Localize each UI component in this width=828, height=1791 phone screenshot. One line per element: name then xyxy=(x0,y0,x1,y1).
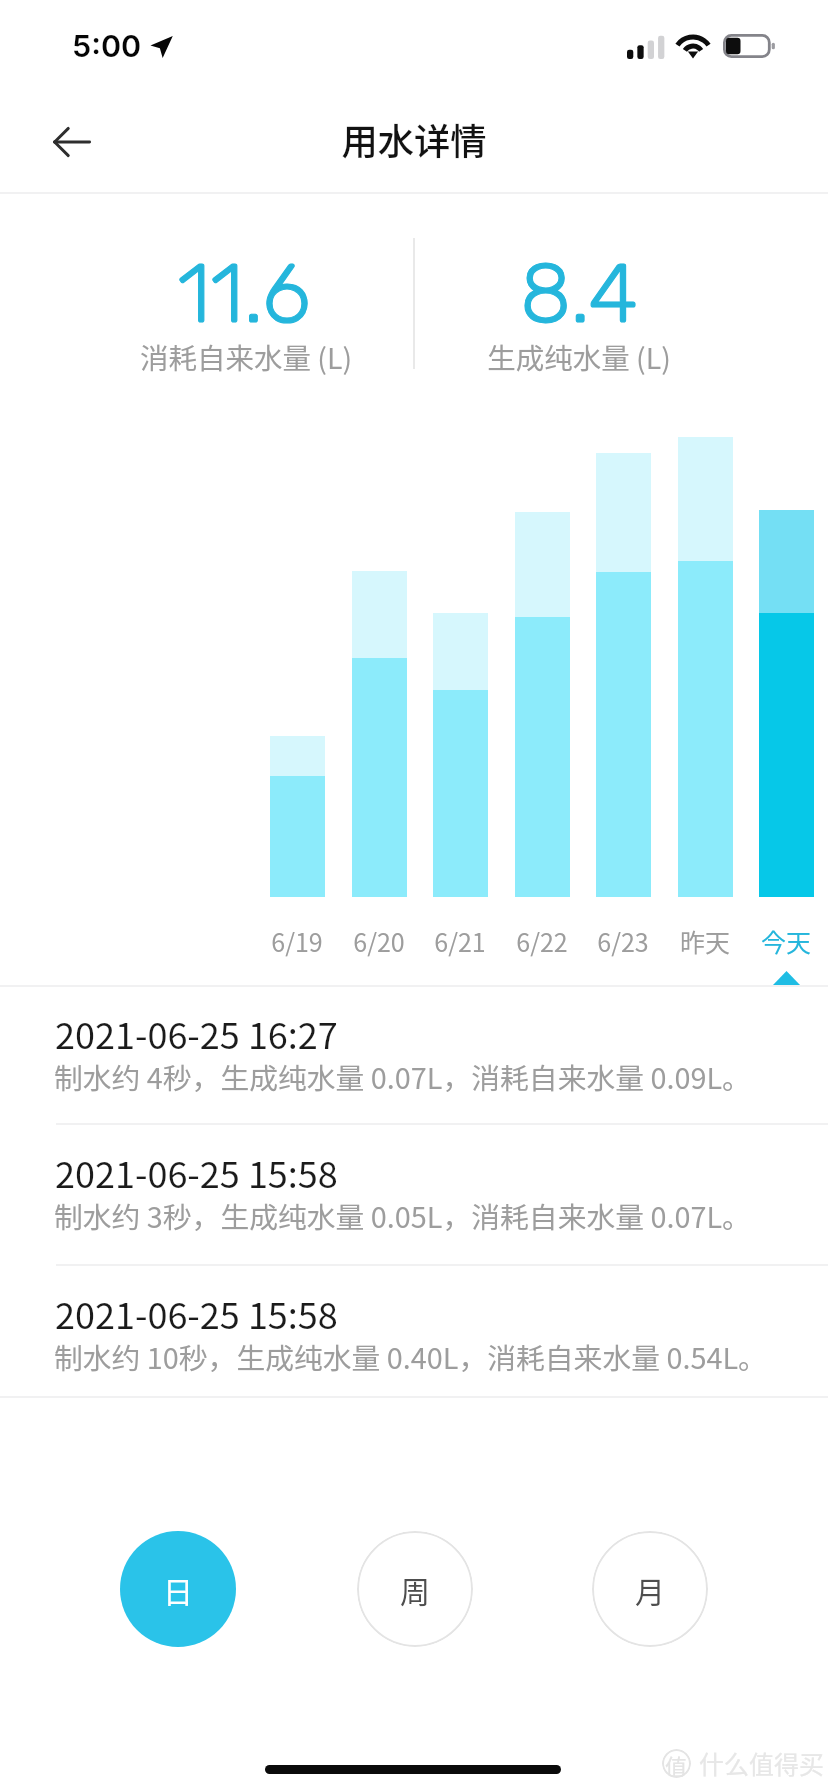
staticText: 什么值得买 xyxy=(699,1745,825,1781)
staticText: 生成纯水量 (L) xyxy=(379,336,779,377)
staticText: 6/22 xyxy=(492,923,592,959)
staticText: 2021-06-25 15:58 xyxy=(55,1287,338,1339)
staticText: 制水约 4秒，生成纯水量 0.07L，消耗自来水量 0.09L。 xyxy=(54,1056,751,1098)
staticText: 8.4 xyxy=(379,244,779,342)
staticText: 6/21 xyxy=(410,923,510,959)
staticText: 6/19 xyxy=(247,923,347,959)
button[interactable]: 日 xyxy=(120,1531,236,1647)
staticText: 制水约 10秒，生成纯水量 0.40L，消耗自来水量 0.54L。 xyxy=(54,1336,767,1378)
staticText: 周 xyxy=(400,1568,430,1611)
button[interactable]: 周 xyxy=(357,1531,473,1647)
button[interactable]: 月 xyxy=(592,1531,708,1647)
staticText: 6/20 xyxy=(329,923,429,959)
staticText: 2021-06-25 15:58 xyxy=(55,1146,338,1198)
staticText: 制水约 3秒，生成纯水量 0.05L，消耗自来水量 0.07L。 xyxy=(54,1195,751,1237)
button[interactable]: Back xyxy=(41,111,103,173)
staticText: 11.6 xyxy=(44,244,444,342)
staticText: 消耗自来水量 (L) xyxy=(46,336,446,377)
staticText: 昨天 xyxy=(655,923,755,959)
staticText: 6/23 xyxy=(573,923,673,959)
staticText: 8.4 xyxy=(379,244,779,342)
staticText: 5:00 xyxy=(72,27,142,64)
staticText: 2021-06-25 16:27 xyxy=(55,1007,338,1059)
staticText: 今天 xyxy=(736,923,828,959)
staticText: 月 xyxy=(635,1568,665,1611)
staticText: 11.6 xyxy=(44,244,444,342)
staticText: 日 xyxy=(163,1568,193,1611)
staticText: 值 xyxy=(665,1749,688,1778)
staticText: 用水详情 xyxy=(0,113,828,166)
